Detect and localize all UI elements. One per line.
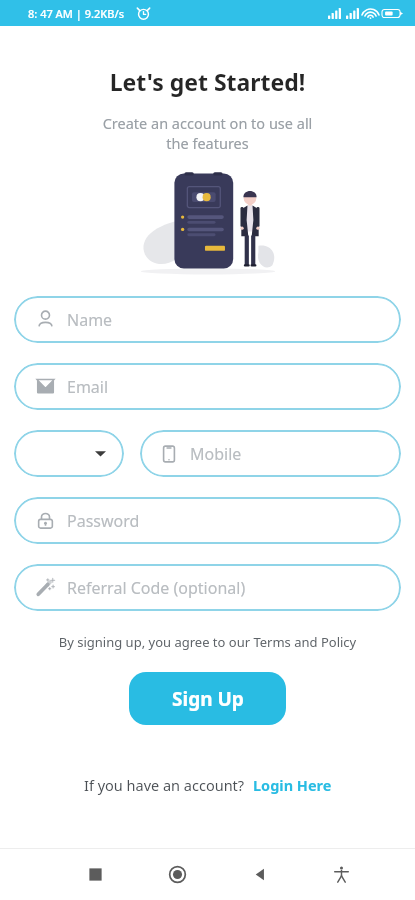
staticText: By signing up, you agree to our Terms an… [0,633,415,651]
staticText: 8: 47 AM | 9.2KB/s [28,6,124,21]
staticText: Email [67,376,109,398]
button[interactable]: Email [14,363,401,410]
staticText: Sign Up [172,686,244,712]
staticText: Create an account on to use all the feat… [0,113,415,154]
staticText: Login Here [253,775,332,795]
staticText: Mobile [190,443,242,465]
staticText: Password [67,510,140,532]
button[interactable]: Name [14,296,401,343]
button[interactable]: Referral Code (optional) [14,564,401,611]
staticText: Referral Code (optional) [67,577,246,599]
staticText: Name [67,309,113,331]
button[interactable]: Password [14,497,401,544]
button[interactable]: Mobile [140,430,401,477]
button[interactable]: Accessibility [324,857,358,891]
button[interactable]: Select country code [14,430,124,477]
button[interactable]: Back [242,857,276,891]
button[interactable]: Login Here [253,775,332,795]
staticText: Let's get Started! [0,66,415,97]
button[interactable]: Sign Up [129,672,286,725]
staticText: If you have an account? [84,775,245,795]
button[interactable]: Home [160,857,194,891]
button[interactable]: Recent apps [78,857,112,891]
